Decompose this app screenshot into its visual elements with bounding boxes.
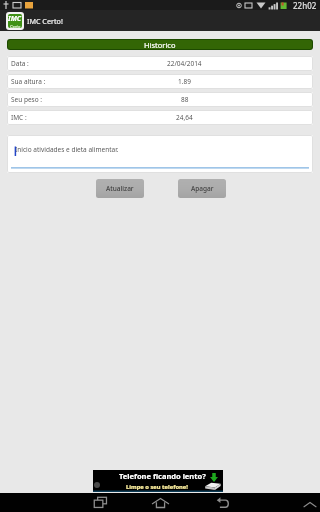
button[interactable]: Seu peso : <box>7 92 313 107</box>
button[interactable]: Back <box>212 493 232 512</box>
staticText: 22h02 <box>293 0 317 10</box>
button[interactable]: Historico <box>8 40 312 49</box>
button[interactable]: Atualizar <box>96 179 144 198</box>
staticText: IMC Certo! <box>27 16 63 26</box>
button[interactable]: Hide navigation bar <box>301 495 319 512</box>
staticText: Telefone ficando lento? <box>119 471 206 481</box>
staticText: Sua altura : <box>11 77 46 86</box>
staticText: 1.89 <box>178 77 191 86</box>
staticText: IMC : <box>11 113 27 122</box>
button[interactable]: Data : <box>7 56 313 71</box>
button[interactable]: Inicio atividades e dieta alimentar. <box>7 135 313 173</box>
staticText: 22/04/2014 <box>167 59 202 68</box>
staticText: Apagar <box>191 184 214 193</box>
staticText: 24,64 <box>176 113 193 122</box>
button[interactable]: Recent apps <box>90 493 110 512</box>
staticText: Seu peso : <box>11 95 43 104</box>
staticText: Certo <box>10 24 21 28</box>
staticText: Inicio atividades e dieta alimentar. <box>15 145 119 154</box>
staticText: Data : <box>11 59 29 68</box>
button[interactable]: Telefone ficando lento? <box>93 470 223 492</box>
staticText: Limpe o seu telefone! <box>126 483 188 491</box>
staticText: 88 <box>181 95 189 104</box>
button[interactable]: Sua altura : <box>7 74 313 89</box>
button[interactable]: IMC : <box>7 110 313 125</box>
button[interactable]: Apagar <box>178 179 226 198</box>
staticText: Atualizar <box>106 184 134 193</box>
staticText: Historico <box>144 40 176 49</box>
button[interactable]: Home <box>150 493 170 512</box>
staticText: IMC <box>8 14 22 24</box>
